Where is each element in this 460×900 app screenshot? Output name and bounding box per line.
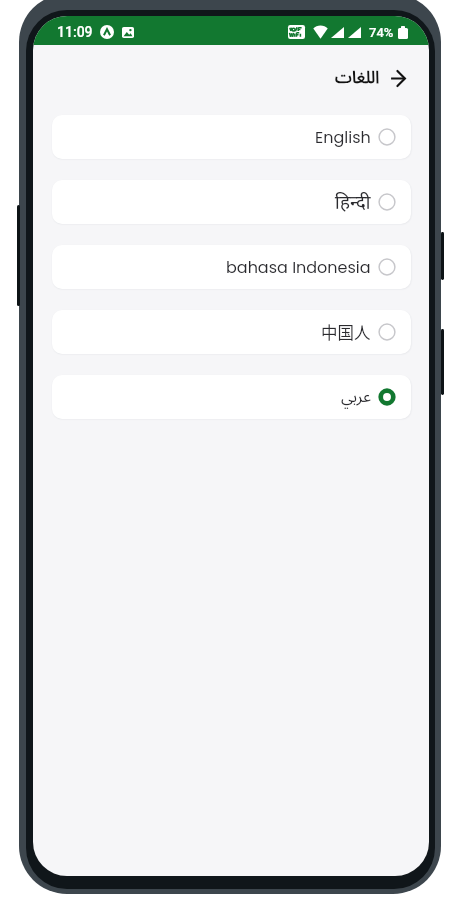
staticText: 11:09 bbox=[57, 24, 93, 40]
staticText: English bbox=[315, 126, 371, 148]
staticText: हिन्दी bbox=[335, 189, 371, 215]
button[interactable]: Back bbox=[385, 65, 411, 91]
button[interactable]: हिन्दी bbox=[52, 180, 411, 224]
staticText: اللغات bbox=[335, 60, 380, 96]
staticText: bahasa Indonesia bbox=[226, 256, 371, 278]
staticText: 中国人 bbox=[321, 320, 371, 344]
staticText: عربي bbox=[341, 380, 371, 414]
button[interactable]: 中国人 bbox=[52, 310, 411, 354]
button[interactable]: bahasa Indonesia bbox=[52, 245, 411, 289]
staticText: 74% bbox=[369, 25, 394, 40]
button[interactable]: عربي bbox=[52, 375, 411, 419]
button[interactable]: English bbox=[52, 115, 411, 159]
